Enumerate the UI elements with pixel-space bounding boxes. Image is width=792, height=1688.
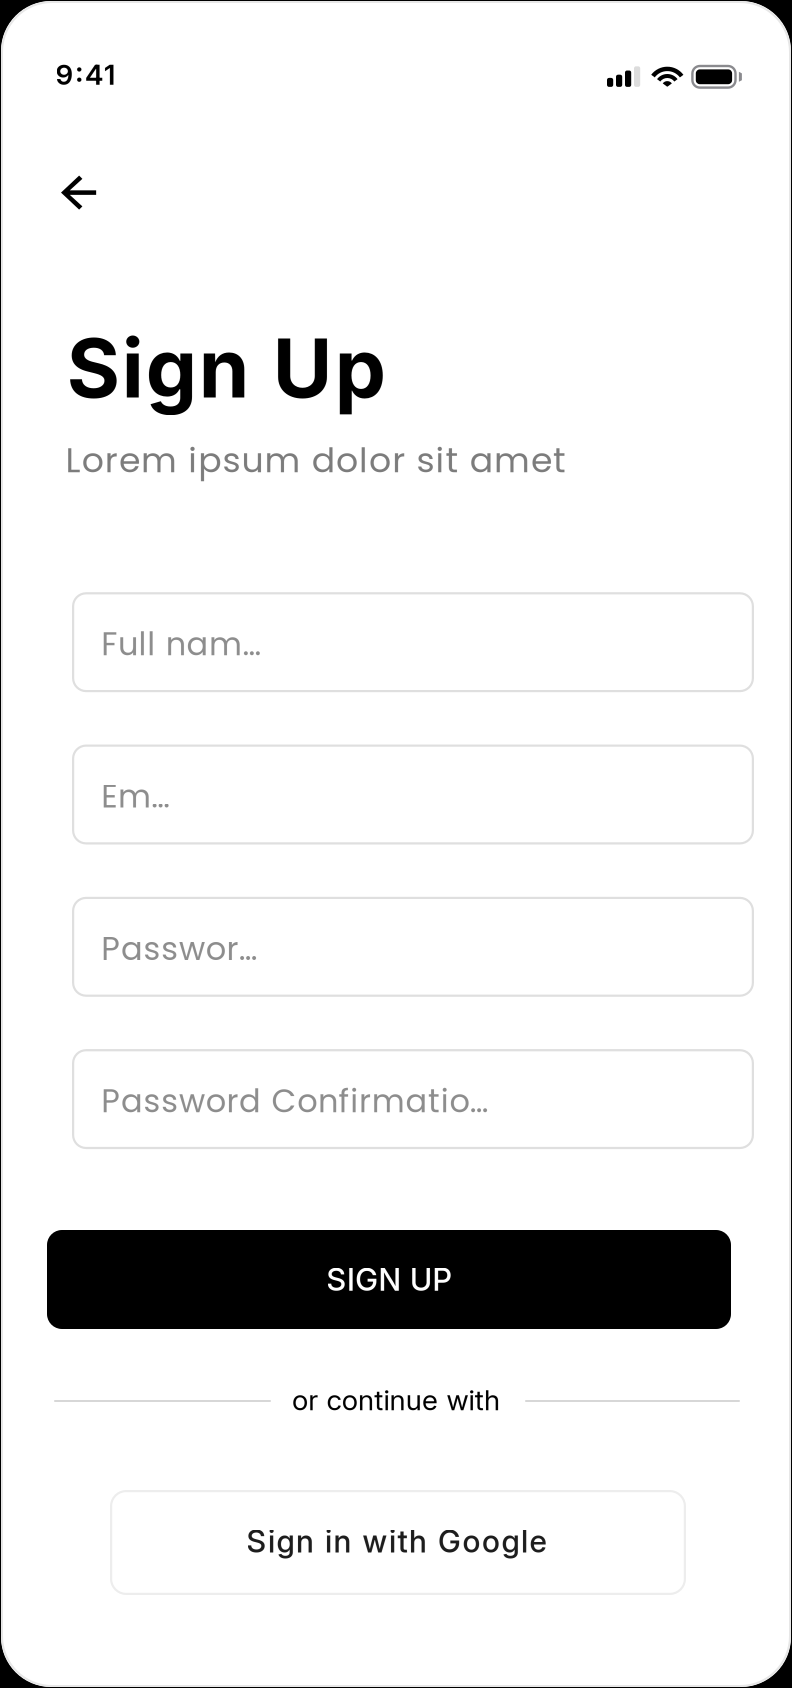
staticText: Email [101, 774, 191, 819]
button[interactable]: Password Confirmation [72, 1049, 754, 1149]
staticText: 9:41 [55, 58, 115, 91]
button[interactable]: Full name [72, 592, 754, 692]
button[interactable]: SIGN UP [47, 1230, 731, 1329]
button[interactable]: Back [43, 159, 111, 227]
button[interactable]: Password [72, 897, 754, 997]
staticText: Password [101, 926, 261, 971]
staticText: Sign Up [67, 319, 386, 417]
staticText: Full name [101, 622, 263, 666]
staticText: Lorem ipsum dolor sit amet [66, 436, 566, 484]
staticText: Password Confirmation [101, 1079, 490, 1123]
staticText: SIGN UP [327, 1261, 451, 1298]
staticText: or continue with [292, 1383, 500, 1417]
button[interactable]: Sign in with Google [110, 1490, 686, 1595]
button[interactable]: Email [72, 744, 754, 844]
staticText: Sign in with Google [247, 1523, 547, 1560]
